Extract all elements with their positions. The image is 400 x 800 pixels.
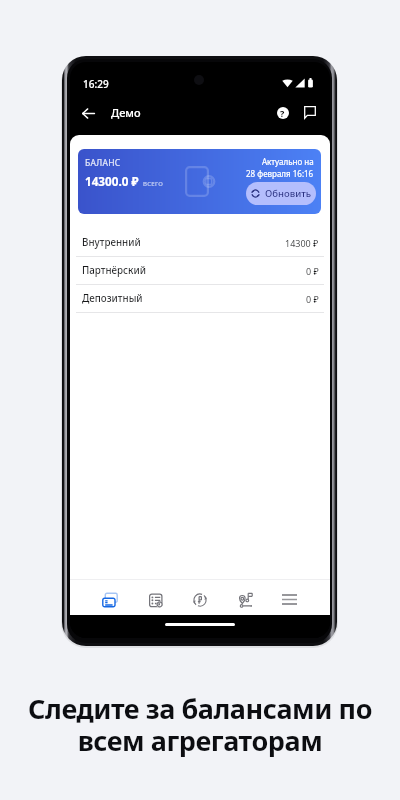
staticText: 14300.0 ₽	[85, 173, 139, 189]
button[interactable]: Партнёрский	[70, 257, 330, 285]
staticText: 14300 ₽	[285, 237, 319, 249]
button[interactable]: БАЛАНС	[78, 149, 321, 214]
staticText: ВСЕГО	[143, 180, 164, 188]
staticText: 0 ₽	[306, 293, 319, 305]
button[interactable]: Точки	[222, 582, 267, 615]
button[interactable]: Операции	[132, 582, 177, 615]
button[interactable]: Помощь	[270, 100, 295, 125]
staticText: 28 февраля 16:16	[246, 168, 314, 179]
button[interactable]: Чат	[297, 100, 322, 125]
button[interactable]: Обмен	[177, 582, 222, 615]
button[interactable]: Депозитный	[70, 285, 330, 313]
button[interactable]: Обновить	[246, 182, 316, 205]
staticText: 16:29	[83, 77, 109, 91]
staticText: Демо	[111, 105, 141, 120]
button[interactable]: Меню	[267, 582, 312, 615]
staticText: Депозитный	[82, 292, 143, 305]
staticText: 0 ₽	[306, 265, 319, 277]
staticText: Актуально на	[262, 156, 314, 167]
button[interactable]: Внутренний	[70, 229, 330, 257]
staticText: Партнёрский	[82, 264, 146, 277]
button[interactable]: Карты	[88, 582, 132, 615]
staticText: ?	[280, 107, 285, 119]
staticText: Обновить	[265, 187, 312, 200]
button[interactable]: Назад	[76, 101, 100, 125]
staticText: Внутренний	[82, 236, 141, 249]
staticText: БАЛАНС	[85, 157, 121, 169]
staticText: Следите за балансами по всем агрегаторам	[0, 690, 400, 759]
